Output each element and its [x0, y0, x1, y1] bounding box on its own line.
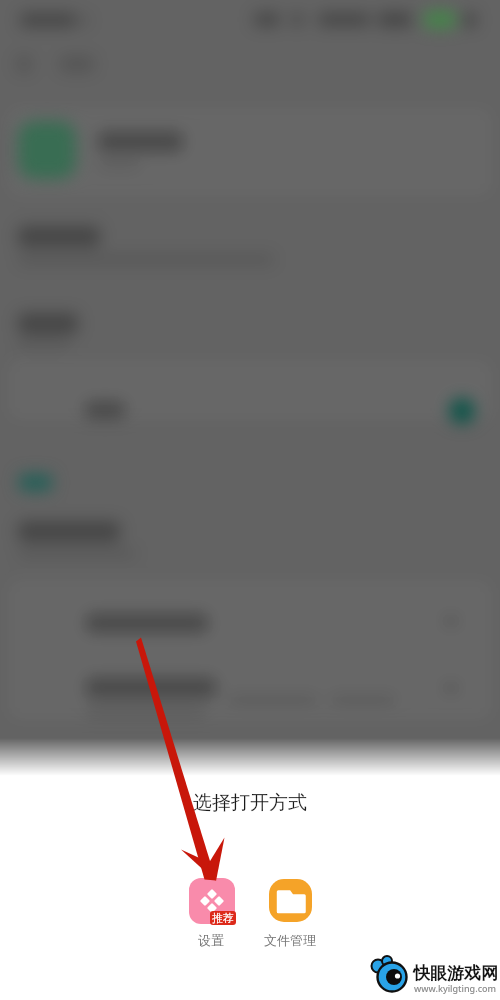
- staticText: 快眼游戏网: [413, 963, 498, 984]
- staticText: 文件管理: [264, 932, 316, 948]
- staticText: 设置: [198, 932, 224, 948]
- button[interactable]: Dismiss: [0, 0, 500, 740]
- button[interactable]: Settings: [170, 873, 260, 949]
- staticText: www.kyilgting.com: [414, 982, 497, 994]
- staticText: 选择打开方式: [0, 791, 500, 815]
- button[interactable]: File manager: [245, 873, 335, 949]
- staticText: 推荐: [212, 911, 234, 925]
